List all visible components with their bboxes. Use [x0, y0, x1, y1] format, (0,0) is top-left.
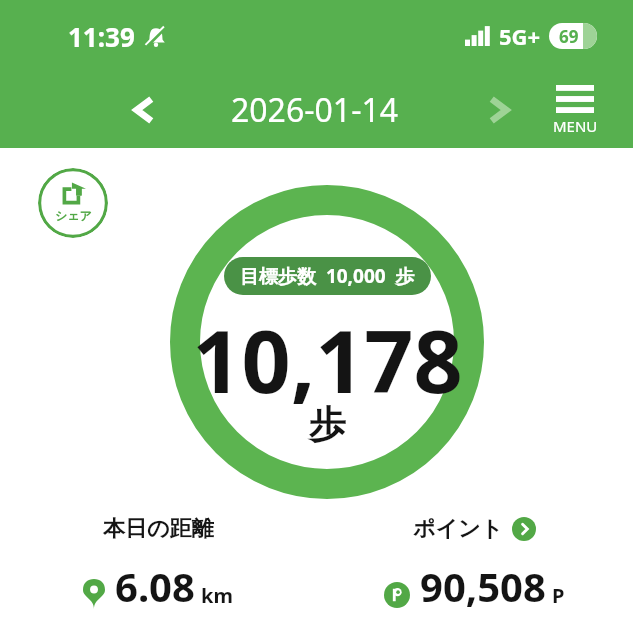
staticText: 11:39 — [68, 19, 135, 54]
staticText: P — [552, 582, 565, 609]
staticText: 本日の距離 — [103, 515, 214, 543]
button[interactable]: Menu — [537, 85, 613, 136]
staticText: 69 — [559, 25, 579, 48]
staticText: 90,508 — [420, 559, 546, 612]
button[interactable]: Next day — [475, 86, 523, 134]
button[interactable]: ポイント — [316, 515, 633, 612]
staticText: 2026-01-14 — [231, 88, 399, 132]
button[interactable]: Share — [38, 168, 108, 238]
staticText: 歩 — [309, 401, 346, 448]
staticText: ポイント — [413, 515, 504, 543]
staticText: km — [201, 582, 233, 609]
staticText: 目標歩数 10,000 歩 — [240, 263, 415, 289]
button[interactable]: 目標歩数 10,000 歩 — [224, 257, 431, 295]
staticText: 10,178 — [192, 301, 463, 418]
button[interactable]: Previous day — [120, 86, 168, 134]
staticText: シェア — [55, 208, 92, 223]
staticText: 5G+ — [499, 21, 541, 51]
button[interactable]: 本日の距離 — [0, 515, 316, 612]
staticText: MENU — [553, 116, 598, 136]
staticText: 6.08 — [115, 559, 195, 612]
